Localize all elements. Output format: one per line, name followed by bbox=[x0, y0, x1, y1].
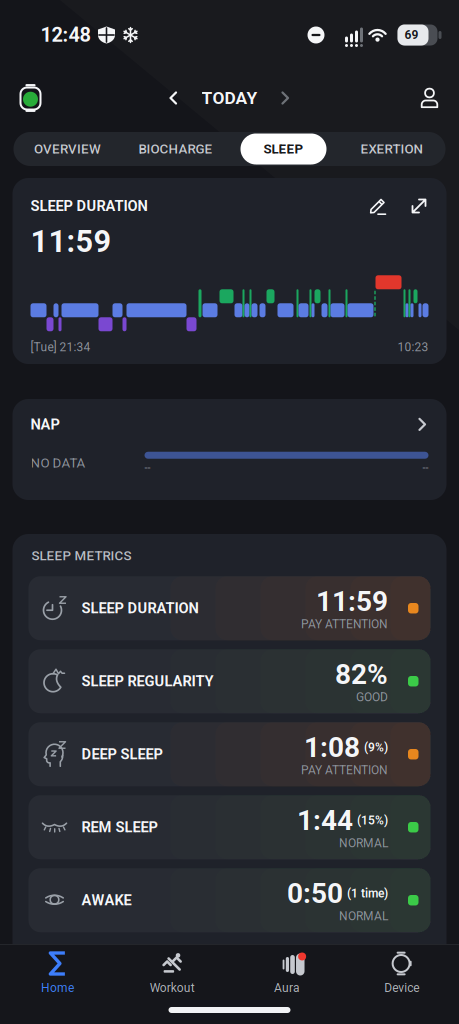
staticText: 1:44 bbox=[297, 804, 353, 836]
staticText: SLEEP DURATION bbox=[81, 600, 198, 617]
staticText: SLEEP DURATION bbox=[30, 198, 147, 214]
button[interactable]: DEEP SLEEP bbox=[28, 722, 430, 786]
staticText: NORMAL bbox=[339, 836, 388, 850]
staticText: 10:23 bbox=[397, 340, 428, 354]
button[interactable]: EXERTION bbox=[337, 132, 445, 166]
staticText: NO DATA bbox=[30, 455, 85, 470]
staticText: AWAKE bbox=[81, 892, 131, 909]
staticText: 12:48 bbox=[40, 24, 90, 46]
staticText: SLEEP REGULARITY bbox=[81, 673, 213, 690]
staticText: EXERTION bbox=[360, 141, 422, 157]
button[interactable] bbox=[409, 196, 428, 215]
staticText: -- bbox=[422, 462, 428, 474]
staticText: Home bbox=[41, 981, 74, 995]
staticText: OVERVIEW bbox=[34, 141, 101, 157]
staticText: BIOCHARGE bbox=[138, 141, 212, 157]
staticText: 82% bbox=[335, 658, 388, 690]
button[interactable]: AWAKE bbox=[28, 868, 430, 932]
staticText: 11:59 bbox=[316, 585, 388, 617]
button[interactable]: NAP bbox=[12, 399, 446, 500]
staticText: GOOD bbox=[356, 690, 388, 704]
staticText: PAY ATTENTION bbox=[301, 763, 388, 777]
button[interactable]: Workout bbox=[115, 951, 230, 995]
staticText: PAY ATTENTION bbox=[301, 617, 388, 631]
staticText: Workout bbox=[150, 981, 195, 995]
button[interactable]: SLEEP REGULARITY bbox=[28, 649, 430, 713]
staticText: (9%) bbox=[364, 740, 388, 754]
button[interactable]: Aura bbox=[229, 951, 344, 995]
button[interactable]: Device bbox=[344, 951, 459, 995]
button[interactable]: REM SLEEP bbox=[28, 795, 430, 859]
button[interactable] bbox=[418, 87, 440, 109]
button[interactable]: SLEEP DURATION bbox=[28, 576, 430, 640]
staticText: NAP bbox=[30, 416, 59, 433]
button[interactable] bbox=[16, 83, 44, 113]
button[interactable]: SLEEP bbox=[229, 132, 337, 166]
button[interactable] bbox=[368, 196, 387, 216]
button[interactable]: Home bbox=[0, 951, 115, 995]
staticText: 1:08 bbox=[304, 731, 360, 763]
staticText: Aura bbox=[274, 981, 300, 995]
staticText: [Tue] 21:34 bbox=[30, 340, 90, 354]
staticText: SLEEP bbox=[263, 141, 303, 157]
staticText: -- bbox=[144, 462, 150, 474]
staticText: TODAY bbox=[201, 88, 257, 108]
staticText: REM SLEEP bbox=[81, 819, 157, 836]
button[interactable]: BIOCHARGE bbox=[121, 132, 229, 166]
staticText: 69 bbox=[404, 28, 418, 42]
staticText: 11:59 bbox=[30, 224, 111, 259]
staticText: DEEP SLEEP bbox=[81, 746, 162, 763]
staticText: NORMAL bbox=[339, 909, 388, 923]
button[interactable] bbox=[167, 91, 179, 105]
button[interactable] bbox=[279, 91, 291, 105]
staticText: (1 time) bbox=[347, 886, 388, 900]
button[interactable]: OVERVIEW bbox=[13, 132, 121, 166]
staticText: SLEEP METRICS bbox=[31, 548, 131, 563]
staticText: 0:50 bbox=[287, 877, 343, 909]
staticText: (15%) bbox=[357, 813, 388, 827]
staticText: Device bbox=[384, 981, 419, 995]
